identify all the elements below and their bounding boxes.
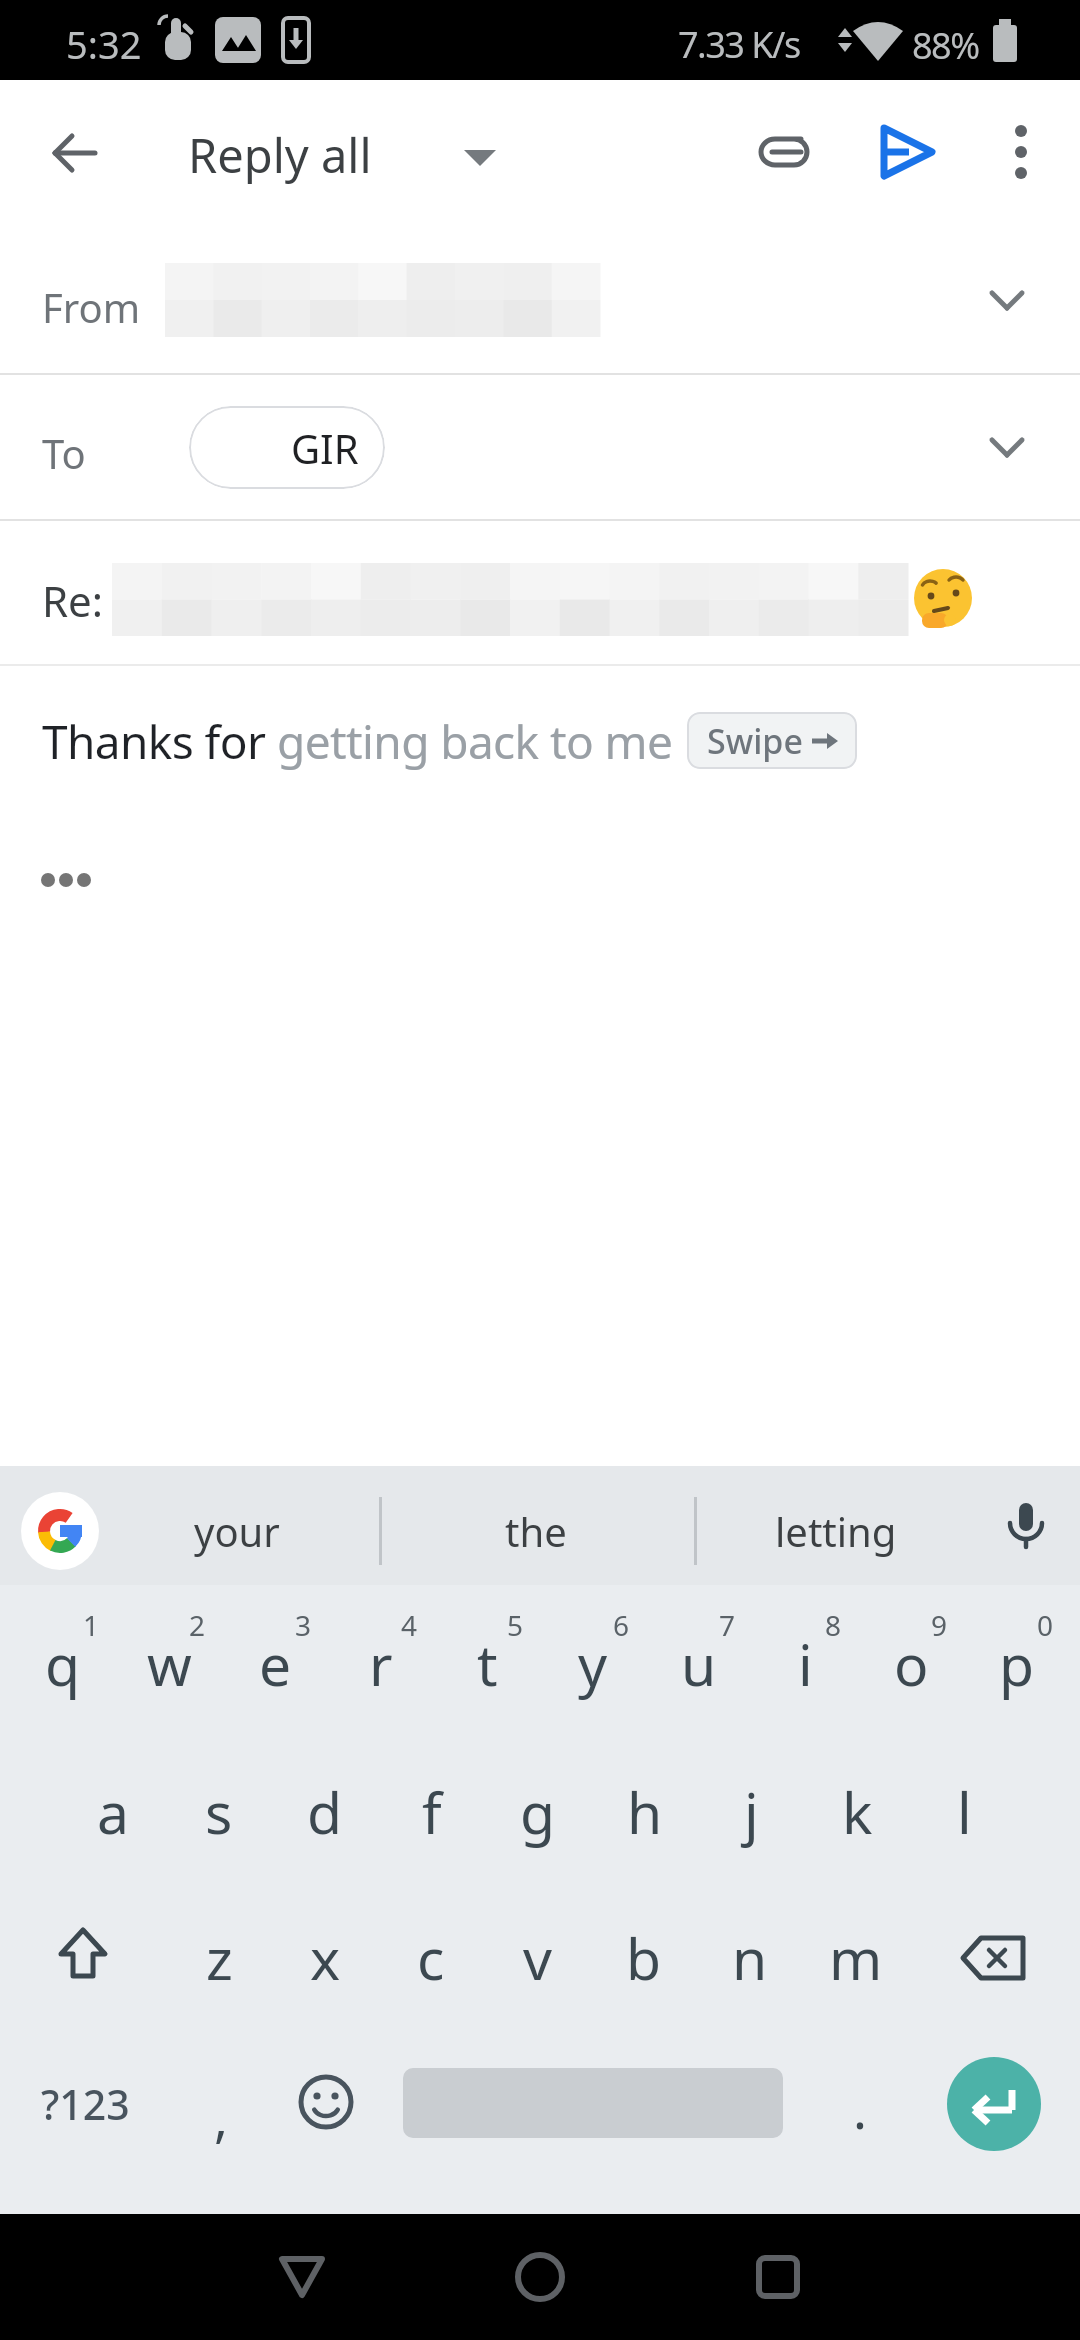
staticText: Re: (42, 572, 104, 629)
staticText: n (732, 1919, 768, 1997)
staticText: 7.33 K/s (678, 20, 800, 69)
button[interactable] (997, 124, 1045, 180)
button[interactable]: i (757, 1614, 853, 1714)
button[interactable]: q (15, 1614, 111, 1714)
staticText: 88% (912, 21, 979, 70)
staticText: your (194, 1504, 280, 1558)
staticText: f (422, 1773, 442, 1851)
button[interactable]: your (127, 1501, 347, 1561)
staticText: t (477, 1625, 498, 1703)
staticText: p (999, 1625, 1035, 1703)
staticText: 7 (719, 1606, 736, 1642)
staticText: b (626, 1919, 662, 1997)
button[interactable]: z (171, 1908, 267, 2008)
button[interactable]: h (597, 1762, 693, 1862)
button[interactable]: f (384, 1762, 480, 1862)
button[interactable]: t (439, 1614, 535, 1714)
button[interactable] (757, 124, 813, 180)
staticText: the (505, 1504, 567, 1558)
button[interactable] (961, 1935, 1027, 1981)
button[interactable]: b (596, 1908, 692, 2008)
staticText: v (523, 1919, 552, 1997)
button[interactable]: o (863, 1614, 959, 1714)
button[interactable]: u (651, 1614, 747, 1714)
staticText: letting (775, 1504, 897, 1558)
button[interactable] (21, 1492, 99, 1570)
staticText: x (310, 1919, 341, 1997)
button[interactable] (510, 2247, 570, 2307)
button[interactable] (748, 2247, 808, 2307)
button[interactable] (881, 126, 935, 178)
staticText: 6 (613, 1606, 630, 1642)
button[interactable]: GIR (189, 406, 385, 489)
staticText: z (206, 1919, 233, 1997)
button[interactable]: e (227, 1614, 323, 1714)
button[interactable]: y (545, 1614, 641, 1714)
staticText: Swipe (707, 718, 803, 764)
button[interactable] (53, 1926, 113, 1986)
button[interactable]: l (916, 1762, 1012, 1862)
staticText: j (744, 1773, 759, 1851)
button[interactable]: d (277, 1762, 373, 1862)
staticText: m (829, 1919, 883, 1997)
staticText: q (45, 1625, 81, 1703)
staticText: r (369, 1625, 393, 1703)
staticText: k (842, 1773, 873, 1851)
button[interactable]: w (121, 1614, 217, 1714)
staticText: getting back to me (277, 710, 673, 773)
staticText: l (957, 1773, 972, 1851)
staticText: 4 (401, 1606, 418, 1642)
staticText: Reply all (188, 123, 372, 187)
staticText: ?123 (41, 2076, 130, 2132)
staticText: 1 (83, 1606, 100, 1642)
staticText: i (798, 1625, 813, 1703)
button[interactable]: p (969, 1614, 1065, 1714)
staticText: u (681, 1625, 717, 1703)
staticText: GIR (291, 421, 359, 475)
staticText: 3 (295, 1606, 312, 1642)
staticText: 5:32 (66, 18, 142, 70)
staticText: 0 (1037, 1606, 1054, 1642)
staticText: w (147, 1625, 192, 1703)
button[interactable]: a (65, 1762, 161, 1862)
staticText: h (627, 1773, 663, 1851)
staticText: 2 (189, 1606, 206, 1642)
button[interactable] (947, 2057, 1041, 2151)
button[interactable]: the (426, 1501, 646, 1561)
button[interactable]: letting (726, 1501, 946, 1561)
button[interactable]: c (383, 1908, 479, 2008)
button[interactable]: n (702, 1908, 798, 2008)
button[interactable]: . (830, 2063, 890, 2153)
staticText: y (578, 1625, 608, 1703)
button[interactable] (989, 290, 1025, 312)
button[interactable]: r (333, 1614, 429, 1714)
button[interactable] (272, 2247, 332, 2307)
button[interactable]: , (191, 2071, 251, 2161)
button[interactable]: ?123 (20, 2059, 150, 2149)
staticText: c (417, 1919, 445, 1997)
button[interactable]: s (171, 1762, 267, 1862)
staticText: e (259, 1625, 292, 1703)
button[interactable] (47, 125, 103, 181)
staticText: 9 (931, 1606, 948, 1642)
staticText: To (42, 426, 86, 480)
staticText: 5 (507, 1606, 524, 1642)
button[interactable]: Swipe (687, 712, 857, 769)
button[interactable] (464, 148, 496, 168)
button[interactable]: g (490, 1762, 586, 1862)
button[interactable]: m (808, 1908, 904, 2008)
button[interactable]: j (703, 1762, 799, 1862)
button[interactable]: Reply all (188, 123, 372, 187)
button[interactable] (989, 437, 1025, 459)
staticText: a (97, 1773, 129, 1851)
staticText: d (307, 1773, 343, 1851)
button[interactable]: k (809, 1762, 905, 1862)
button[interactable]: v (489, 1908, 585, 2008)
button[interactable]: x (277, 1908, 373, 2008)
staticText: Thanks for (42, 710, 277, 773)
staticText: From (42, 280, 141, 334)
button[interactable] (1004, 1501, 1048, 1557)
staticText: , (214, 2081, 228, 2152)
button[interactable] (296, 2072, 356, 2132)
